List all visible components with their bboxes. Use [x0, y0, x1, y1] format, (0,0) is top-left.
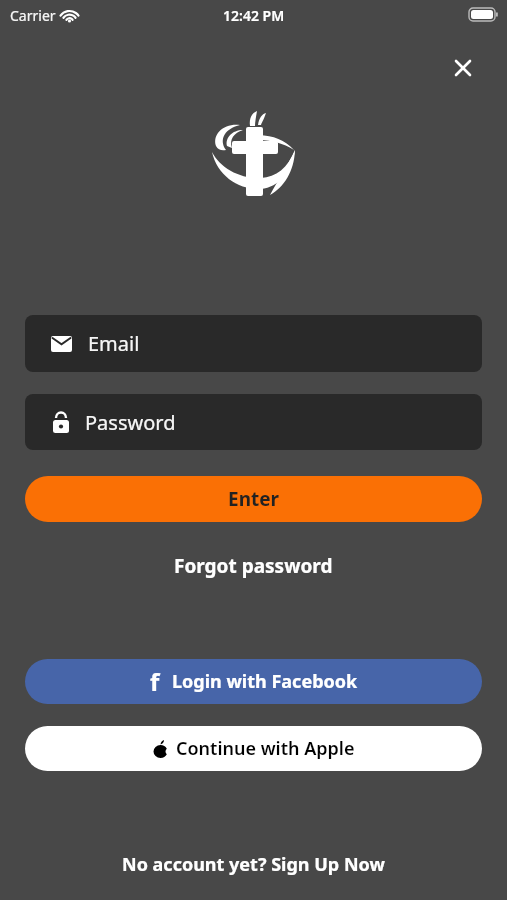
button[interactable]: Continue with Apple: [25, 726, 482, 771]
staticText: Continue with Apple: [176, 736, 355, 761]
staticText: Password: [85, 409, 176, 436]
button[interactable]: [448, 53, 478, 83]
button[interactable]: Enter: [25, 476, 482, 522]
staticText: 12:42 PM: [223, 6, 285, 25]
staticText: Forgot password: [174, 553, 333, 579]
button[interactable]: Email: [25, 315, 482, 372]
staticText: Email: [88, 330, 140, 357]
button[interactable]: Forgot password: [0, 551, 507, 581]
staticText: No account yet? Sign Up Now: [122, 852, 385, 877]
staticText: f: [150, 665, 160, 698]
staticText: Carrier: [10, 6, 56, 25]
staticText: Enter: [228, 486, 280, 512]
button[interactable]: No account yet? Sign Up Now: [0, 848, 507, 880]
staticText: Login with Facebook: [172, 669, 358, 694]
button[interactable]: Password: [25, 394, 482, 450]
button[interactable]: f: [25, 659, 482, 704]
